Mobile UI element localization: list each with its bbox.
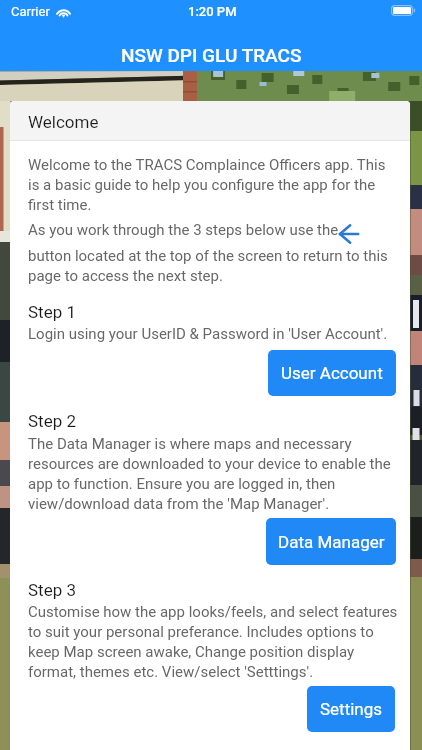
staticText: button located at the top of the screen … xyxy=(28,247,388,284)
staticText: Login using your UserID & Password in 'U… xyxy=(28,325,388,343)
staticText: The Data Manager is where maps and neces… xyxy=(28,435,391,512)
staticText: Welcome xyxy=(28,112,99,132)
button[interactable]: Data Manager xyxy=(266,518,396,565)
staticText: 1:20 PM xyxy=(188,4,237,19)
button[interactable]: User Account xyxy=(268,350,396,396)
staticText: Carrier xyxy=(11,4,50,19)
staticText: User Account xyxy=(281,363,383,383)
other: Back xyxy=(338,224,359,244)
staticText: Step 1 xyxy=(28,302,76,322)
staticText: Welcome to the TRACS Complaince Officers… xyxy=(28,156,386,213)
staticText: As you work through the 3 steps below us… xyxy=(28,221,339,239)
staticText: Data Manager xyxy=(278,532,385,552)
button[interactable]: Settings xyxy=(307,686,395,732)
staticText: Step 3 xyxy=(28,580,76,600)
staticText: Settings xyxy=(320,699,383,719)
staticText: Step 2 xyxy=(28,411,76,431)
staticText: Customise how the app looks/feels, and s… xyxy=(28,603,398,680)
staticText: NSW DPI GLU TRACS xyxy=(121,44,302,66)
